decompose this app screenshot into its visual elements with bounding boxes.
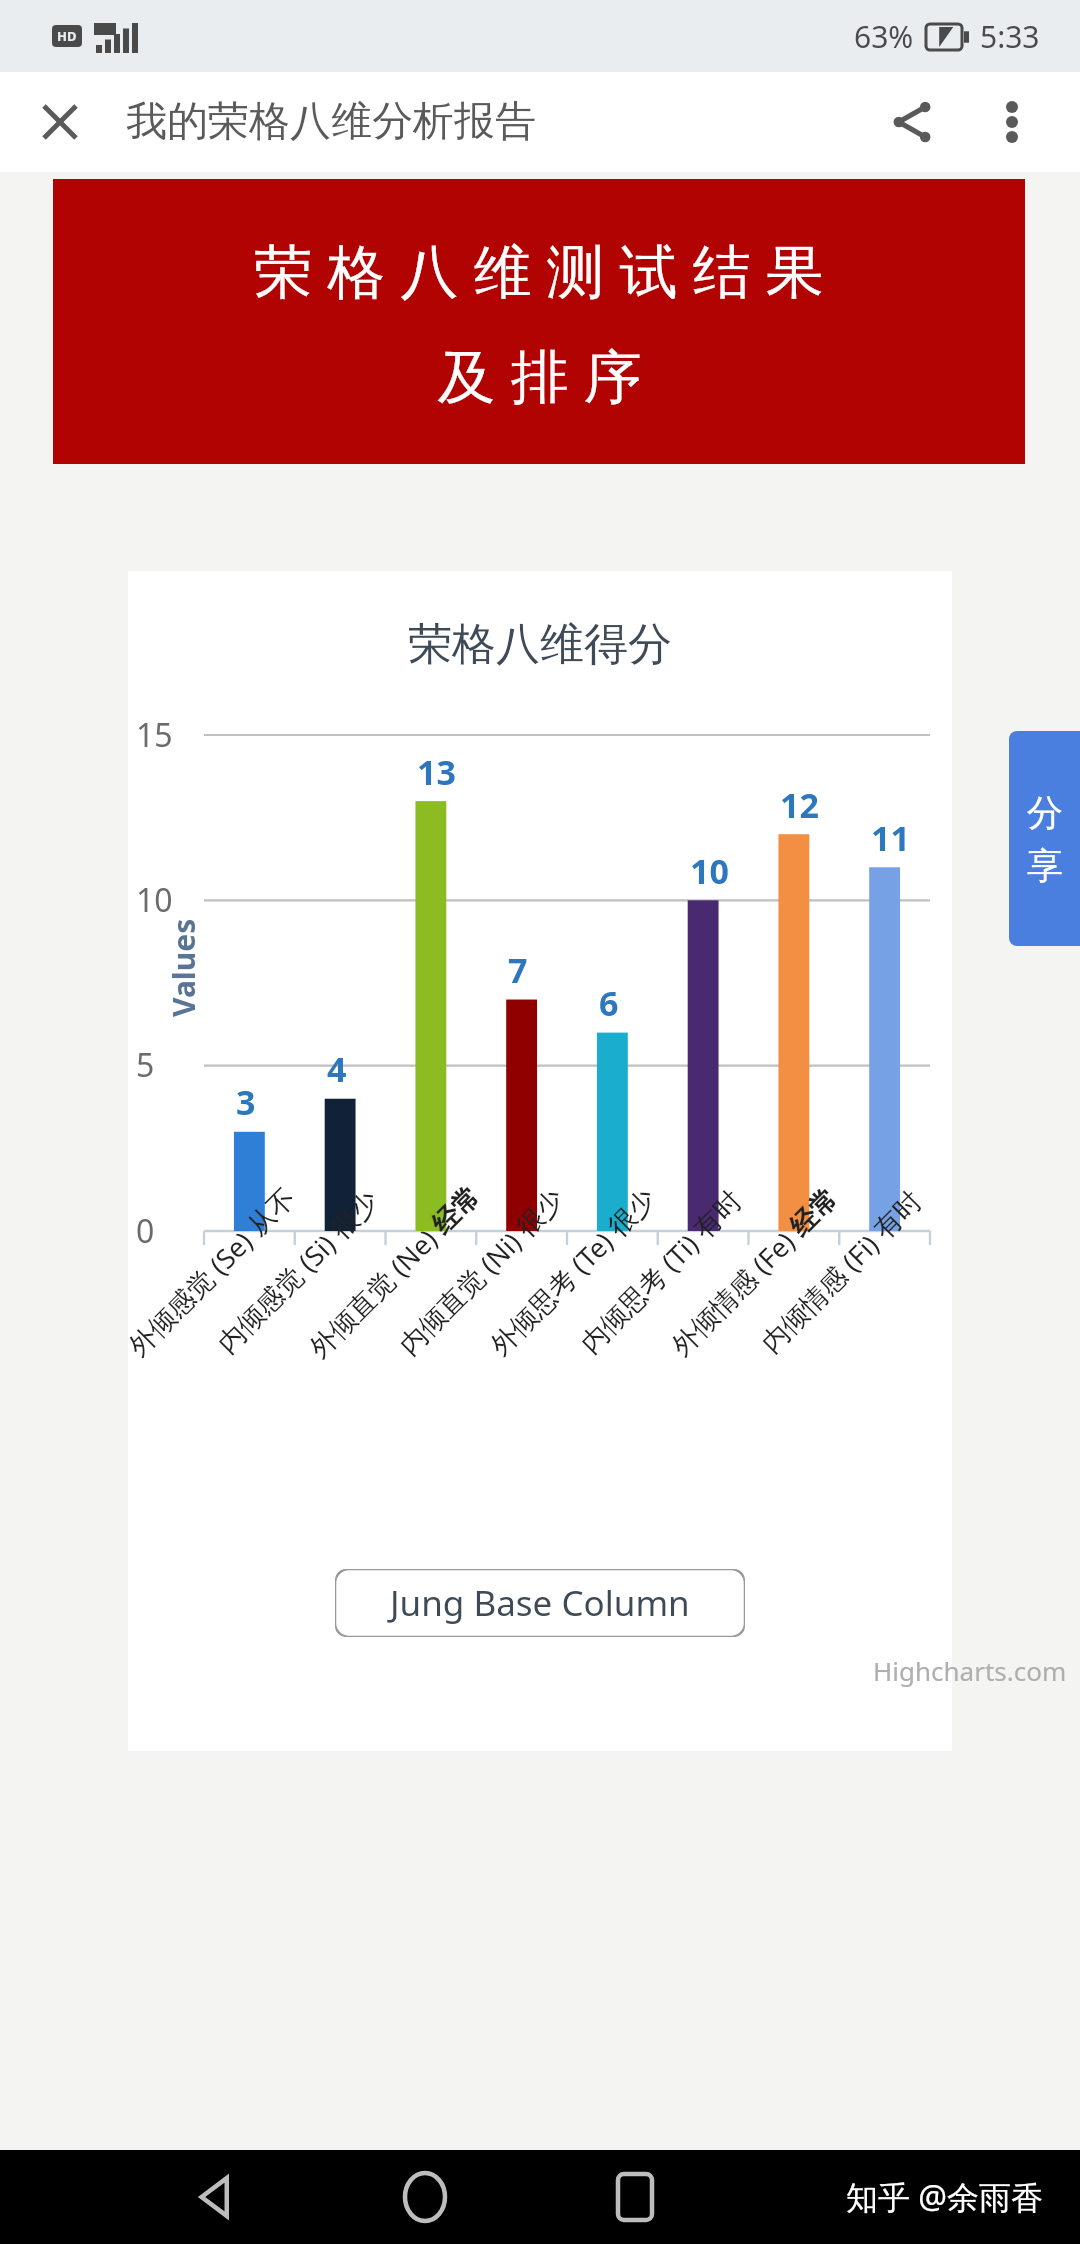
button[interactable]: Close — [22, 84, 98, 160]
button[interactable]: More options — [974, 84, 1050, 160]
staticText: Jung Base Column — [390, 1579, 690, 1627]
staticText: 15 — [136, 713, 173, 757]
staticText: 10 — [690, 848, 729, 894]
staticText: 我的荣格八维分析报告 — [126, 96, 536, 148]
staticText: 11 — [871, 815, 910, 861]
staticText: 知乎 @余雨香 — [846, 2175, 1044, 2219]
staticText: 5 — [136, 1043, 155, 1087]
staticText: 63% — [854, 16, 914, 57]
staticText: 7 — [508, 947, 528, 993]
staticText: 很少 — [601, 1182, 663, 1244]
staticText: 荣 格 八 维 测 试 结 果 — [254, 230, 824, 309]
staticText: 内倾情感 (Fi) — [752, 1221, 892, 1360]
staticText: 外倾感觉 (Se) — [120, 1218, 265, 1363]
staticText: 从不 — [240, 1181, 303, 1243]
staticText: Values — [163, 918, 204, 1017]
staticText: 荣格八维得分 — [408, 617, 672, 672]
staticText: 12 — [780, 782, 819, 828]
staticText: 有时 — [687, 1184, 749, 1246]
button[interactable]: Jung Base Column — [335, 1569, 745, 1637]
staticText: 5:33 — [980, 16, 1040, 57]
staticText: 内倾感觉 (Si) — [208, 1221, 348, 1361]
staticText: 外倾直觉 (Ne) — [300, 1216, 449, 1365]
staticText: 外倾情感 (Fe) — [662, 1218, 807, 1363]
staticText: 6 — [599, 980, 619, 1026]
button[interactable]: Home — [370, 2150, 480, 2244]
staticText: 4 — [327, 1046, 347, 1092]
staticText: 很少 — [324, 1184, 386, 1246]
staticText: 分 — [1027, 790, 1063, 835]
staticText: 内倾思考 (Ti) — [571, 1221, 711, 1361]
staticText: 很少 — [509, 1182, 571, 1244]
button[interactable]: 分 — [1009, 731, 1080, 946]
staticText: 内倾直觉 (Ni) — [390, 1219, 534, 1362]
staticText: 及 排 序 — [437, 335, 642, 414]
staticText: 有时 — [867, 1184, 929, 1246]
button[interactable]: Back — [160, 2150, 270, 2244]
staticText: HD — [57, 27, 77, 45]
staticText: 13 — [417, 749, 456, 795]
staticText: 经常 — [783, 1181, 845, 1243]
staticText: 外倾思考 (Te) — [481, 1218, 625, 1363]
staticText: 0 — [136, 1209, 155, 1253]
button[interactable]: Share — [874, 84, 950, 160]
button[interactable]: Recents — [580, 2150, 690, 2244]
staticText: 3 — [236, 1079, 256, 1125]
staticText: 享 — [1027, 843, 1063, 888]
staticText: Highcharts.com — [873, 1653, 1067, 1688]
staticText: 10 — [136, 878, 173, 922]
staticText: 经常 — [425, 1179, 487, 1241]
